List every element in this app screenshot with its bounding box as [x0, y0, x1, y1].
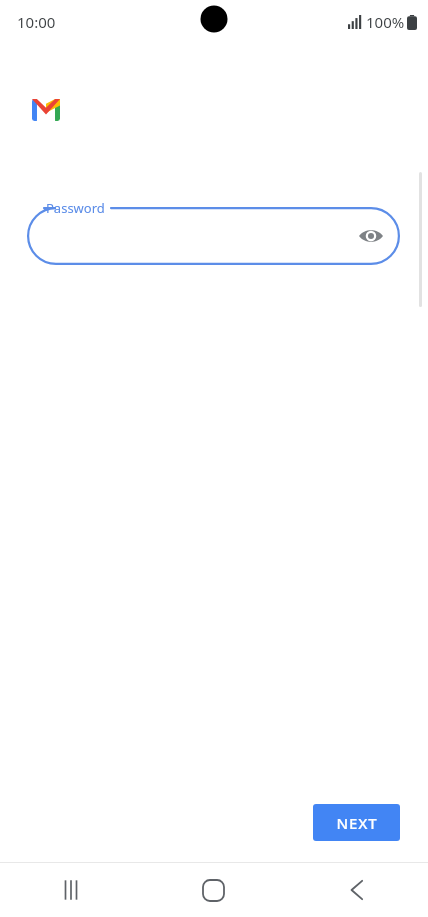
- staticText: 10:00: [17, 12, 56, 32]
- other: Gmail: [32, 99, 60, 121]
- button[interactable]: NEXT: [313, 804, 400, 841]
- staticText: NEXT: [336, 813, 378, 833]
- staticText: Password: [46, 199, 105, 217]
- button[interactable]: Recent apps: [0, 863, 142, 917]
- button[interactable]: Show password: [355, 220, 387, 252]
- button[interactable]: Password: [27, 207, 400, 265]
- button[interactable]: Home: [142, 863, 285, 917]
- button[interactable]: Back: [285, 863, 428, 917]
- staticText: 100%: [366, 12, 405, 32]
